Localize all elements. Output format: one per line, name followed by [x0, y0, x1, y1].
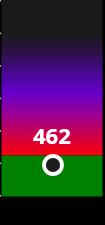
staticText: 462 [33, 120, 71, 150]
button[interactable]: Marker [42, 154, 64, 176]
